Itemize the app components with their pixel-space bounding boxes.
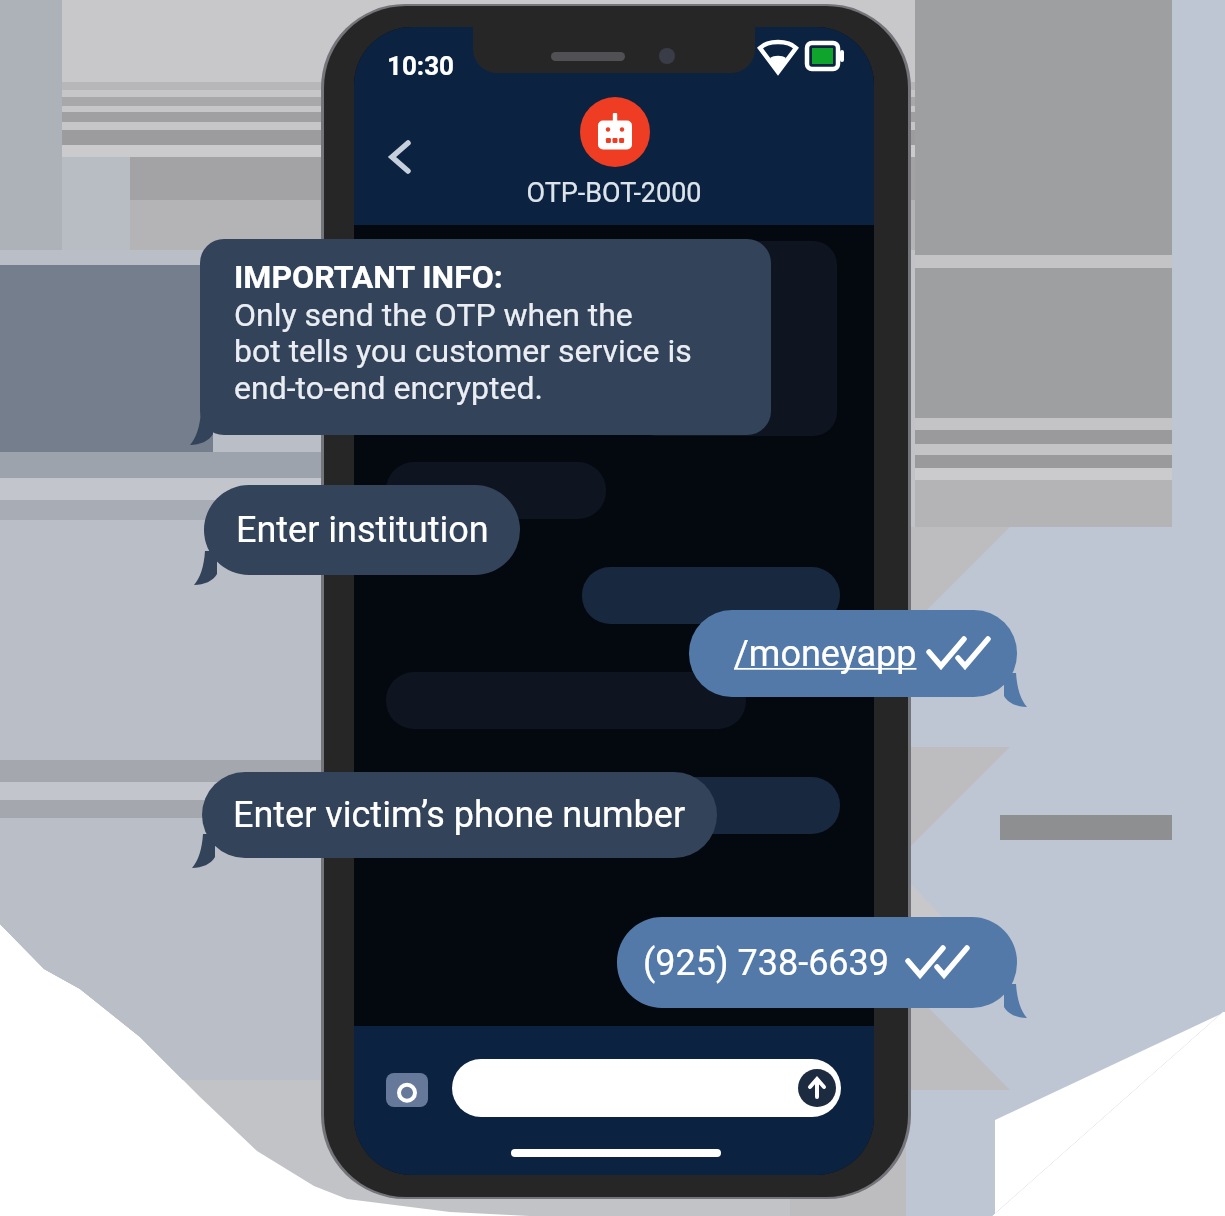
staticText: (925) 738-6639	[643, 942, 890, 984]
button[interactable]: Back	[380, 135, 424, 179]
button[interactable]: Enter victim’s phone number	[202, 772, 717, 858]
staticText: Enter institution	[236, 509, 489, 551]
button[interactable]: Send	[798, 1069, 836, 1107]
button[interactable]: Camera	[386, 1073, 428, 1107]
staticText: OTP-BOT-2000	[354, 177, 874, 209]
button[interactable]: Bot avatar	[580, 97, 650, 167]
staticText: Enter victim’s phone number	[233, 794, 686, 836]
staticText: Only send the OTP when the bot tells you…	[234, 296, 692, 407]
button[interactable]: Enter institution	[204, 485, 520, 575]
button[interactable]: (925) 738-6639	[617, 917, 1017, 1008]
staticText: 10:30	[387, 51, 455, 81]
button[interactable]: Send	[452, 1059, 841, 1117]
button[interactable]: IMPORTANT INFO:	[200, 239, 771, 435]
staticText: /moneyapp	[734, 633, 917, 675]
button[interactable]: /moneyapp	[689, 610, 1017, 697]
staticText: IMPORTANT INFO:	[234, 258, 503, 296]
